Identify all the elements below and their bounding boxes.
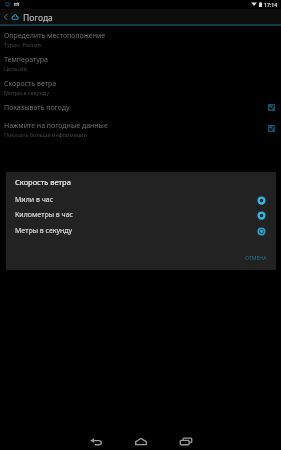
button[interactable]: Navigate up [0, 9, 10, 24]
staticText: 17:14 [264, 1, 278, 8]
staticText: Скорость ветра [15, 177, 71, 187]
button[interactable]: Back [74, 424, 118, 450]
staticText: Цельсий [4, 65, 27, 72]
button[interactable]: ОТМЕНА [240, 250, 272, 265]
staticText: Скорость ветра [4, 79, 57, 89]
staticText: Показать больше информации [4, 131, 87, 138]
button[interactable]: Мили в час [6, 194, 276, 206]
staticText: Погода [23, 12, 53, 24]
staticText: Метры в секунду [15, 226, 257, 236]
button[interactable]: Температура [0, 55, 281, 72]
button[interactable]: Home [119, 424, 163, 450]
button[interactable]: Метры в секунду [6, 225, 276, 237]
staticText: Температура [4, 55, 48, 65]
staticText: Нажмите на погодные данные [4, 121, 108, 131]
button[interactable]: Километры в час [6, 209, 276, 221]
staticText: Метры в секунду [4, 89, 49, 96]
button[interactable]: Определить местоположение [0, 31, 281, 48]
staticText: Туран, Россия [4, 41, 41, 48]
staticText: ОТМЕНА [245, 254, 267, 261]
button[interactable]: Скорость ветра [0, 79, 281, 96]
button[interactable]: Показывать погоду [0, 103, 281, 113]
staticText: Показывать погоду [4, 103, 70, 113]
staticText: Мили в час [15, 195, 257, 205]
staticText: Километры в час [15, 210, 257, 220]
button[interactable]: Recent apps [164, 424, 208, 450]
staticText: Определить местоположение [4, 31, 106, 41]
button[interactable]: Нажмите на погодные данные [0, 121, 281, 138]
